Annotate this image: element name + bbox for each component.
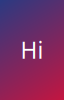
staticText: Hi <box>20 35 43 65</box>
